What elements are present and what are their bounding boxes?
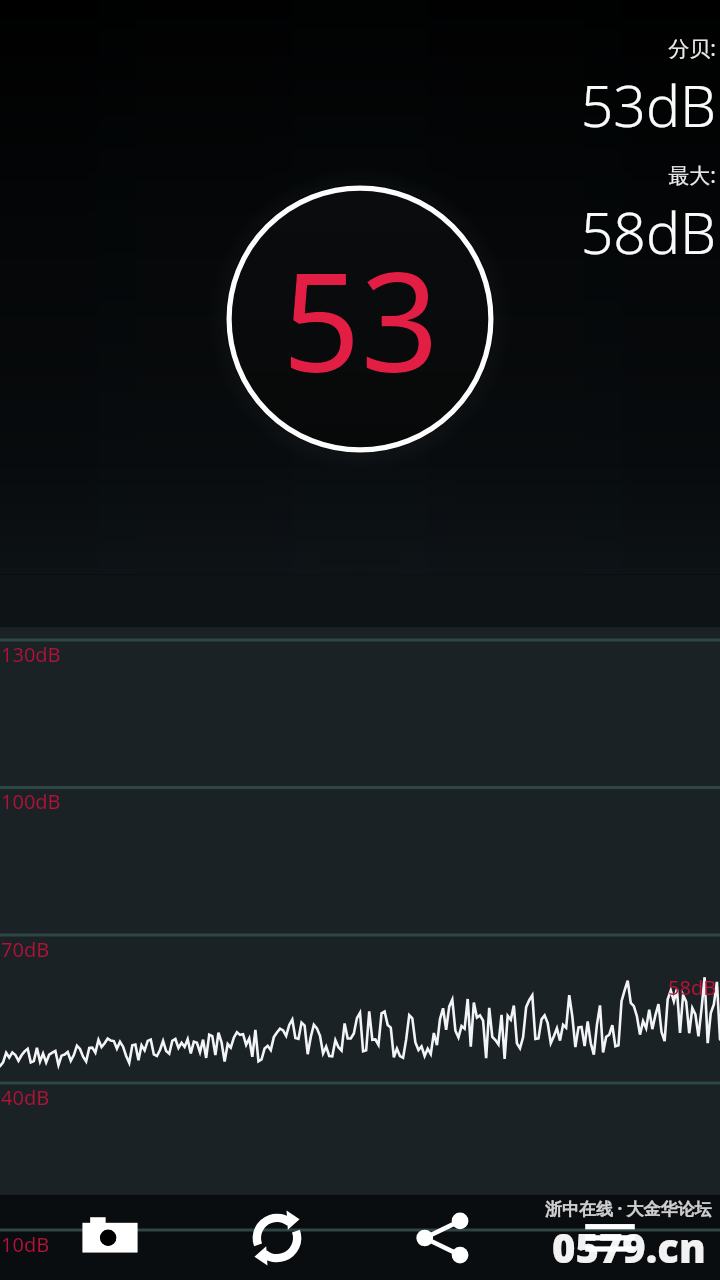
staticText: 10dB <box>1 1231 50 1258</box>
staticText: 58dB <box>668 974 717 1001</box>
staticText: 70dB <box>1 936 50 963</box>
staticText: 浙中在线 · 大金华论坛 <box>545 1197 712 1220</box>
staticText: 58dB <box>580 193 716 271</box>
staticText: 100dB <box>1 788 61 815</box>
staticText: 40dB <box>1 1084 50 1111</box>
staticText: 53 <box>282 226 439 413</box>
staticText: 130dB <box>1 641 61 668</box>
button[interactable]: Take screenshot <box>54 1195 166 1280</box>
staticText: 0579.cn <box>552 1220 706 1274</box>
button[interactable]: Menu <box>554 1195 666 1280</box>
button[interactable]: 53 <box>225 183 495 455</box>
button[interactable]: Reset measurement <box>221 1195 333 1280</box>
button[interactable]: Share <box>387 1195 499 1280</box>
staticText: 最大: <box>668 161 716 190</box>
staticText: 53dB <box>580 66 716 144</box>
staticText: 分贝: <box>668 34 716 63</box>
